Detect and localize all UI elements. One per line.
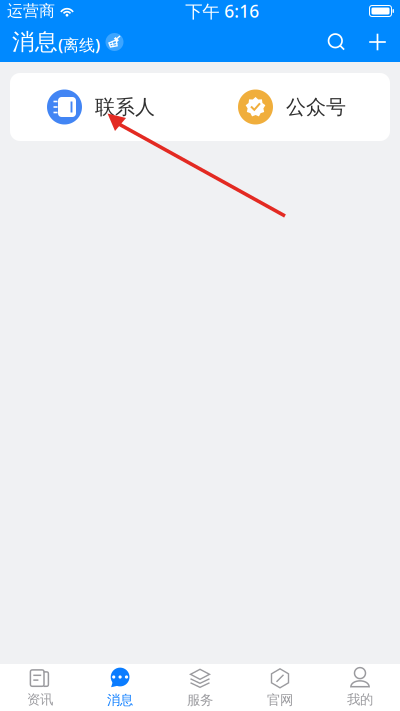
button[interactable]: 服务: [160, 664, 240, 711]
staticText: 官网: [267, 692, 293, 708]
button[interactable]: 我的: [320, 664, 400, 711]
staticText: 下午 6:16: [185, 0, 259, 22]
button[interactable]: 资讯: [0, 664, 80, 711]
button[interactable]: 清理: [100, 32, 124, 51]
staticText: 运营商: [7, 1, 55, 21]
button[interactable]: 消息: [80, 664, 160, 711]
button[interactable]: 公众号: [200, 73, 390, 141]
staticText: 联系人: [95, 95, 155, 119]
button[interactable]: 联系人: [10, 73, 200, 141]
button[interactable]: 搜索: [327, 32, 346, 51]
button[interactable]: 添加: [346, 32, 387, 51]
staticText: 消息: [107, 692, 133, 708]
staticText: 公众号: [286, 95, 346, 119]
button[interactable]: 官网: [240, 664, 320, 711]
staticText: 我的: [347, 691, 373, 708]
staticText: 服务: [187, 692, 213, 708]
staticText: 消息(离线): [12, 28, 100, 56]
staticText: 资讯: [27, 691, 53, 708]
